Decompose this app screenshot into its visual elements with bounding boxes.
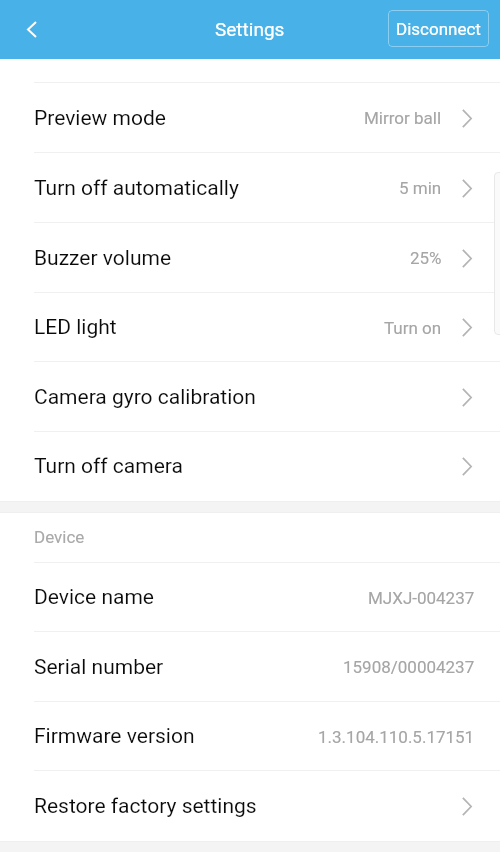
button[interactable]: Camera gyro calibration xyxy=(0,362,500,432)
staticText: Serial number xyxy=(34,655,164,680)
staticText: Preview mode xyxy=(34,106,166,131)
staticText: Mirror ball xyxy=(364,108,442,128)
staticText: 1.3.104.110.5.17151 xyxy=(318,727,475,747)
staticText: Device xyxy=(34,527,85,547)
staticText: Firmware version xyxy=(34,724,195,749)
button[interactable]: LED light xyxy=(0,293,500,362)
button[interactable]: Device name xyxy=(0,563,500,632)
button[interactable]: Firmware version xyxy=(0,702,500,771)
button[interactable]: Buzzer volume xyxy=(0,223,500,293)
staticText: Device name xyxy=(34,585,154,610)
staticText: Camera gyro calibration xyxy=(34,385,256,410)
staticText: Turn off automatically xyxy=(34,176,239,201)
staticText: Restore factory settings xyxy=(34,794,257,819)
staticText: Turn off camera xyxy=(34,454,183,479)
staticText: MJXJ-004237 xyxy=(368,588,475,608)
staticText: Turn on xyxy=(384,318,442,338)
staticText: Buzzer volume xyxy=(34,246,172,271)
staticText: 15908/00004237 xyxy=(343,657,475,677)
button[interactable]: Turn off camera xyxy=(0,432,500,501)
button[interactable]: Turn off automatically xyxy=(0,153,500,223)
button[interactable]: Preview mode xyxy=(0,83,500,153)
button[interactable]: Restore factory settings xyxy=(0,771,500,841)
staticText: 25% xyxy=(410,248,442,268)
button[interactable]: Disconnect xyxy=(388,10,489,47)
staticText: 5 min xyxy=(399,178,442,198)
staticText: Disconnect xyxy=(396,19,481,39)
button[interactable]: Back xyxy=(0,0,56,59)
staticText: LED light xyxy=(34,315,117,340)
button[interactable]: Serial number xyxy=(0,632,500,702)
staticText: Settings xyxy=(215,18,285,40)
